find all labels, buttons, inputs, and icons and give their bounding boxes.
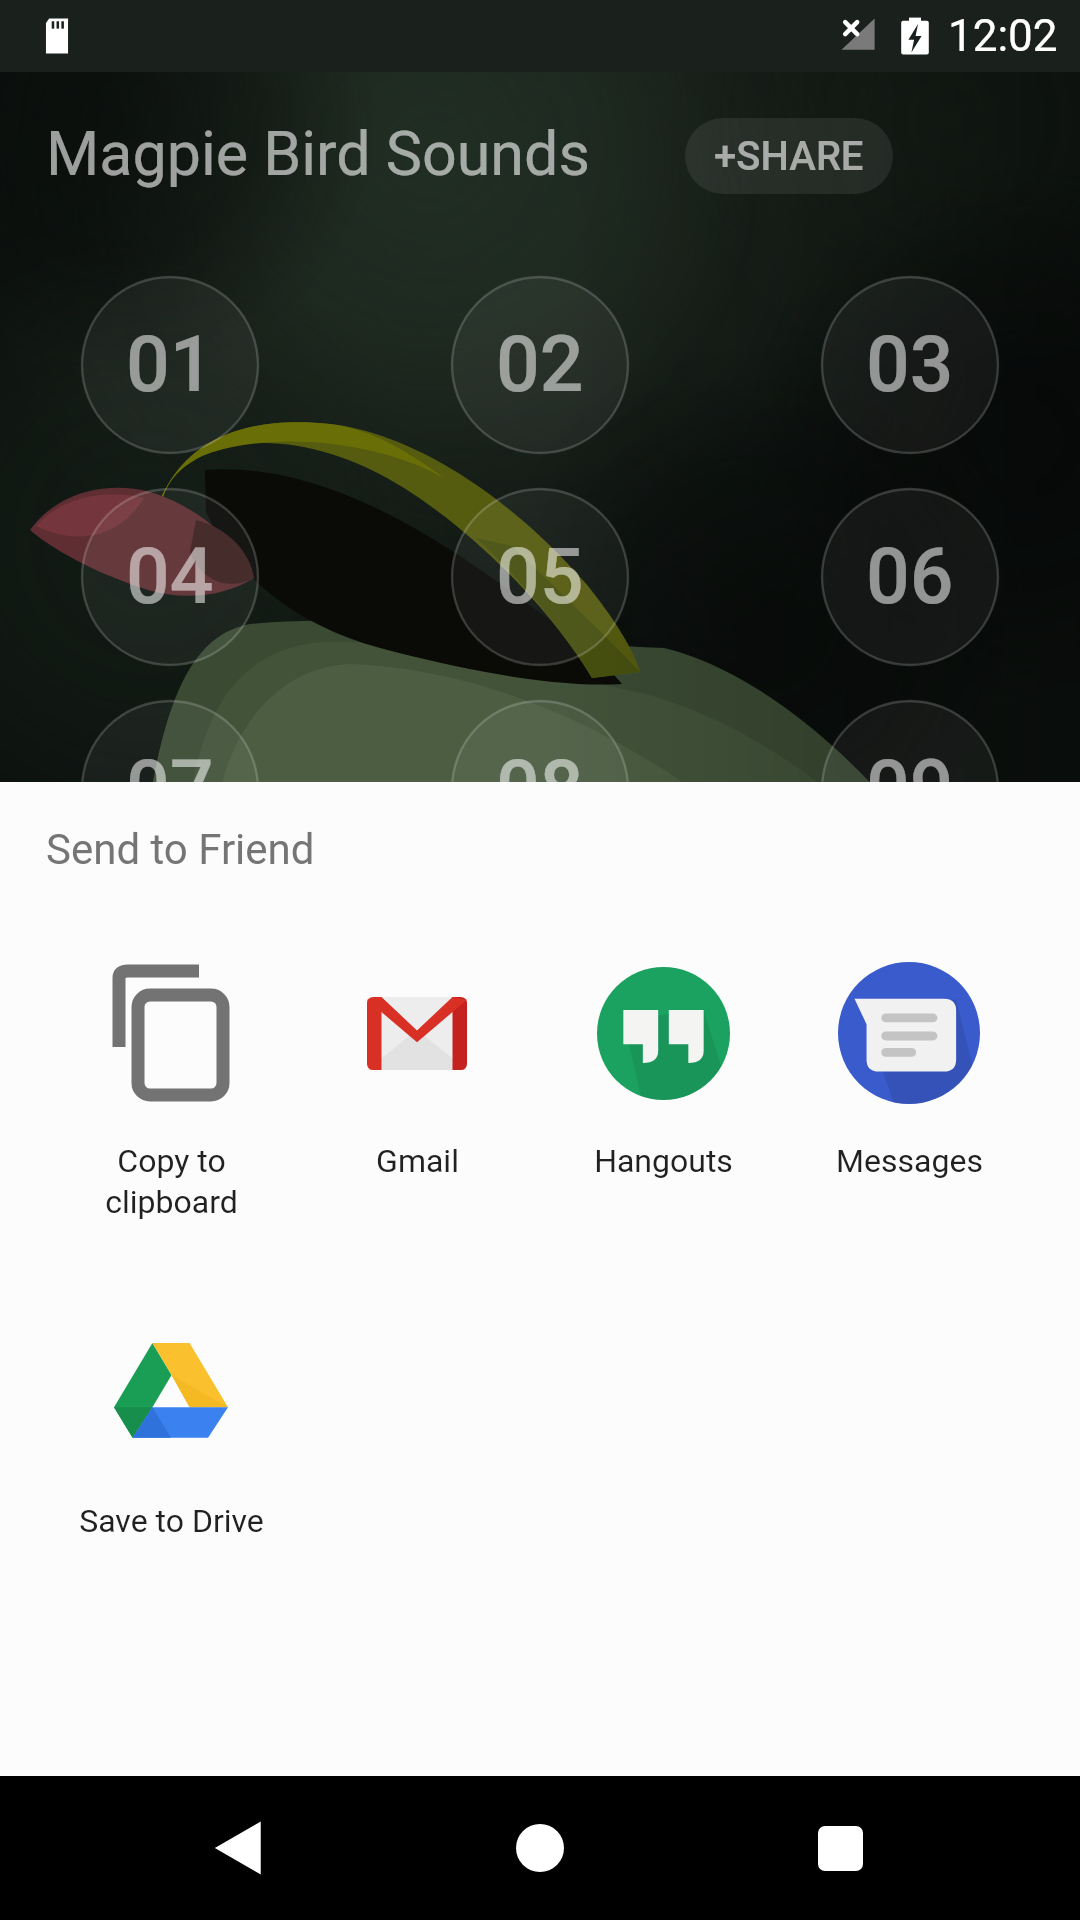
button[interactable]: 07 xyxy=(81,700,259,878)
staticText: Magpie Bird Sounds xyxy=(46,118,590,189)
button[interactable]: Copy to clipboard xyxy=(48,961,294,1221)
button[interactable]: 09 xyxy=(821,700,999,878)
button[interactable]: Gmail xyxy=(294,961,540,1180)
staticText: Save to Drive xyxy=(79,1502,264,1540)
staticText: Gmail xyxy=(376,1142,459,1180)
staticText: 06 xyxy=(866,532,954,622)
button[interactable]: Back xyxy=(180,1776,300,1920)
button[interactable]: 04 xyxy=(81,488,259,666)
button[interactable]: Home xyxy=(480,1776,600,1920)
staticText: 05 xyxy=(496,532,584,622)
button[interactable]: Messages xyxy=(786,961,1032,1180)
staticText: 03 xyxy=(866,320,954,410)
button[interactable]: Hangouts xyxy=(540,961,786,1180)
staticText: 12:02 xyxy=(948,10,1058,62)
staticText: 07 xyxy=(126,744,214,834)
staticText: 04 xyxy=(126,532,214,622)
button[interactable]: Save to Drive xyxy=(48,1321,294,1540)
staticText: Copy to clipboard xyxy=(105,1142,238,1221)
button[interactable]: +SHARE xyxy=(685,118,893,194)
staticText: Messages xyxy=(836,1142,983,1180)
button[interactable]: 01 xyxy=(81,276,259,454)
staticText: 09 xyxy=(866,744,954,834)
staticText: +SHARE xyxy=(714,133,864,180)
staticText: 01 xyxy=(126,320,214,410)
button[interactable]: 08 xyxy=(451,700,629,878)
button[interactable]: 03 xyxy=(821,276,999,454)
button[interactable]: 02 xyxy=(451,276,629,454)
button[interactable]: 06 xyxy=(821,488,999,666)
staticText: Send to Friend xyxy=(46,825,315,874)
button[interactable]: Recent apps xyxy=(780,1776,900,1920)
button[interactable]: 05 xyxy=(451,488,629,666)
staticText: Hangouts xyxy=(594,1142,733,1180)
staticText: 08 xyxy=(496,744,584,834)
staticText: 02 xyxy=(496,320,584,410)
